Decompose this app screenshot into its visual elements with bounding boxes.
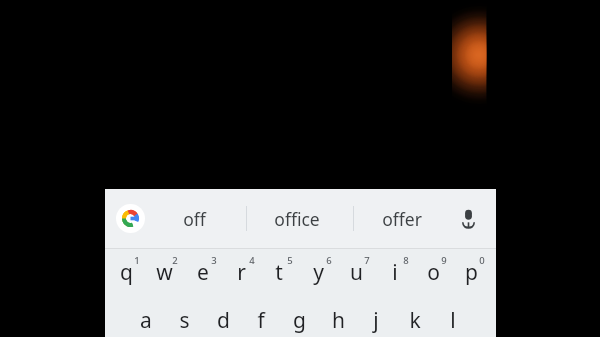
staticText: 1 <box>134 254 140 267</box>
staticText: off <box>183 207 206 231</box>
button[interactable]: Google Search <box>116 204 145 233</box>
staticText: 9 <box>441 254 447 267</box>
staticText: 0 <box>479 254 485 267</box>
staticText: g <box>293 306 306 335</box>
staticText: 5 <box>287 254 293 267</box>
staticText: f <box>257 306 265 335</box>
button[interactable]: r <box>222 248 260 296</box>
staticText: q <box>120 258 133 287</box>
button[interactable]: e <box>184 248 222 296</box>
button[interactable]: off <box>144 189 244 248</box>
button[interactable]: u <box>337 248 375 296</box>
button[interactable]: g <box>280 296 318 337</box>
button[interactable]: t <box>260 248 298 296</box>
button[interactable]: h <box>319 296 357 337</box>
button[interactable]: y <box>299 248 337 296</box>
staticText: w <box>156 258 173 287</box>
button[interactable]: i <box>376 248 414 296</box>
staticText: p <box>465 258 478 287</box>
button[interactable]: office <box>247 189 347 248</box>
button[interactable]: s <box>165 296 203 337</box>
staticText: s <box>179 306 190 335</box>
staticText: y <box>313 258 324 287</box>
staticText: d <box>217 306 230 335</box>
staticText: 4 <box>249 254 255 267</box>
staticText: j <box>373 306 379 335</box>
staticText: 2 <box>172 254 178 267</box>
staticText: e <box>197 258 209 287</box>
staticText: k <box>409 306 421 335</box>
staticText: 6 <box>326 254 332 267</box>
staticText: t <box>275 258 283 287</box>
button[interactable]: j <box>357 296 395 337</box>
staticText: office <box>274 207 320 231</box>
button[interactable]: a <box>127 296 165 337</box>
staticText: l <box>450 306 456 335</box>
staticText: i <box>392 258 398 287</box>
button[interactable]: p <box>452 248 490 296</box>
staticText: 8 <box>403 254 409 267</box>
staticText: 7 <box>364 254 370 267</box>
staticText: o <box>427 258 440 287</box>
button[interactable]: w <box>145 248 183 296</box>
staticText: a <box>140 306 152 335</box>
button[interactable]: f <box>242 296 280 337</box>
staticText: h <box>332 306 345 335</box>
button[interactable]: o <box>414 248 452 296</box>
button[interactable]: d <box>204 296 242 337</box>
staticText: u <box>350 258 363 287</box>
staticText: r <box>237 258 246 287</box>
staticText: offer <box>382 207 422 231</box>
button[interactable]: l <box>434 296 472 337</box>
button[interactable]: offer <box>352 189 452 248</box>
button[interactable]: q <box>107 248 145 296</box>
button[interactable]: Voice input <box>453 203 484 234</box>
button[interactable]: k <box>396 296 434 337</box>
staticText: 3 <box>211 254 217 267</box>
